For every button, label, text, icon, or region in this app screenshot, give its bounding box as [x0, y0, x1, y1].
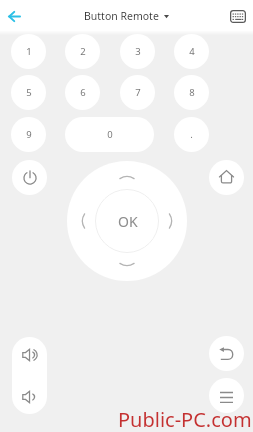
button[interactable]: Back: [2, 3, 26, 29]
button[interactable]: 6: [65, 75, 100, 110]
button[interactable]: 9: [11, 117, 46, 152]
button[interactable]: 7: [120, 75, 155, 110]
staticText: OK: [118, 212, 138, 231]
staticText: 1: [26, 45, 32, 58]
staticText: 4: [189, 45, 195, 58]
staticText: 2: [80, 45, 86, 58]
button[interactable]: Back: [209, 336, 244, 371]
button[interactable]: 1: [11, 34, 46, 69]
button[interactable]: 3: [120, 34, 155, 69]
button[interactable]: 4: [174, 34, 209, 69]
button[interactable]: 2: [65, 34, 100, 69]
button[interactable]: 8: [174, 75, 209, 110]
button[interactable]: .: [174, 117, 209, 152]
button[interactable]: Home: [209, 160, 244, 195]
staticText: 5: [26, 86, 32, 99]
staticText: 6: [80, 86, 86, 99]
button[interactable]: 5: [11, 75, 46, 110]
button[interactable]: Power: [12, 160, 47, 195]
button[interactable]: 0: [65, 117, 154, 152]
button[interactable]: Keyboard: [227, 5, 249, 27]
staticText: 9: [26, 128, 32, 141]
staticText: Public-PC.com: [118, 406, 252, 432]
button[interactable]: Volume down: [12, 379, 47, 414]
button[interactable]: OK: [96, 190, 159, 253]
staticText: 7: [135, 86, 141, 99]
staticText: 8: [189, 86, 195, 99]
button[interactable]: Button Remote: [84, 9, 169, 23]
button[interactable]: Volume up: [12, 337, 47, 372]
button[interactable]: Menu: [209, 378, 244, 413]
staticText: .: [190, 128, 193, 141]
staticText: 0: [107, 128, 113, 141]
staticText: Button Remote: [84, 9, 159, 23]
staticText: 3: [135, 45, 141, 58]
